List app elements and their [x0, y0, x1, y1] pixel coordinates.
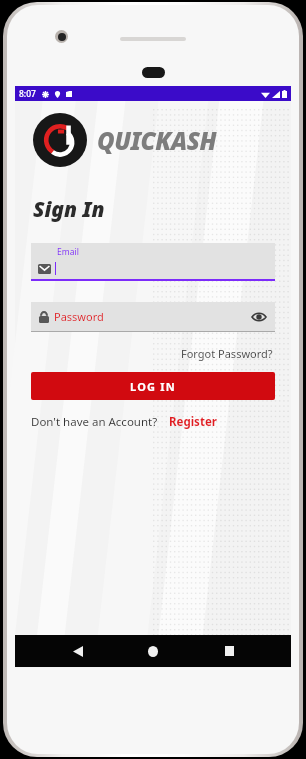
button[interactable]: LOG IN	[31, 372, 275, 400]
staticText: QUICKASH	[97, 124, 217, 157]
button[interactable]: Forgot Password?	[179, 344, 275, 363]
other: Show password	[252, 312, 266, 322]
staticText: Email	[57, 246, 79, 258]
button[interactable]: Back	[65, 638, 91, 664]
staticText: Sign In	[33, 195, 105, 224]
button[interactable]: Register	[167, 412, 219, 432]
staticText: Don't have an Account?	[31, 414, 158, 430]
button[interactable]: Home	[140, 638, 166, 664]
staticText: Password	[54, 309, 104, 324]
staticText: LOG IN	[130, 379, 176, 394]
staticText: 8:07	[19, 88, 36, 100]
button[interactable]: Password	[31, 302, 275, 332]
button[interactable]: Email	[31, 243, 275, 281]
button[interactable]: Recent apps	[216, 638, 242, 664]
